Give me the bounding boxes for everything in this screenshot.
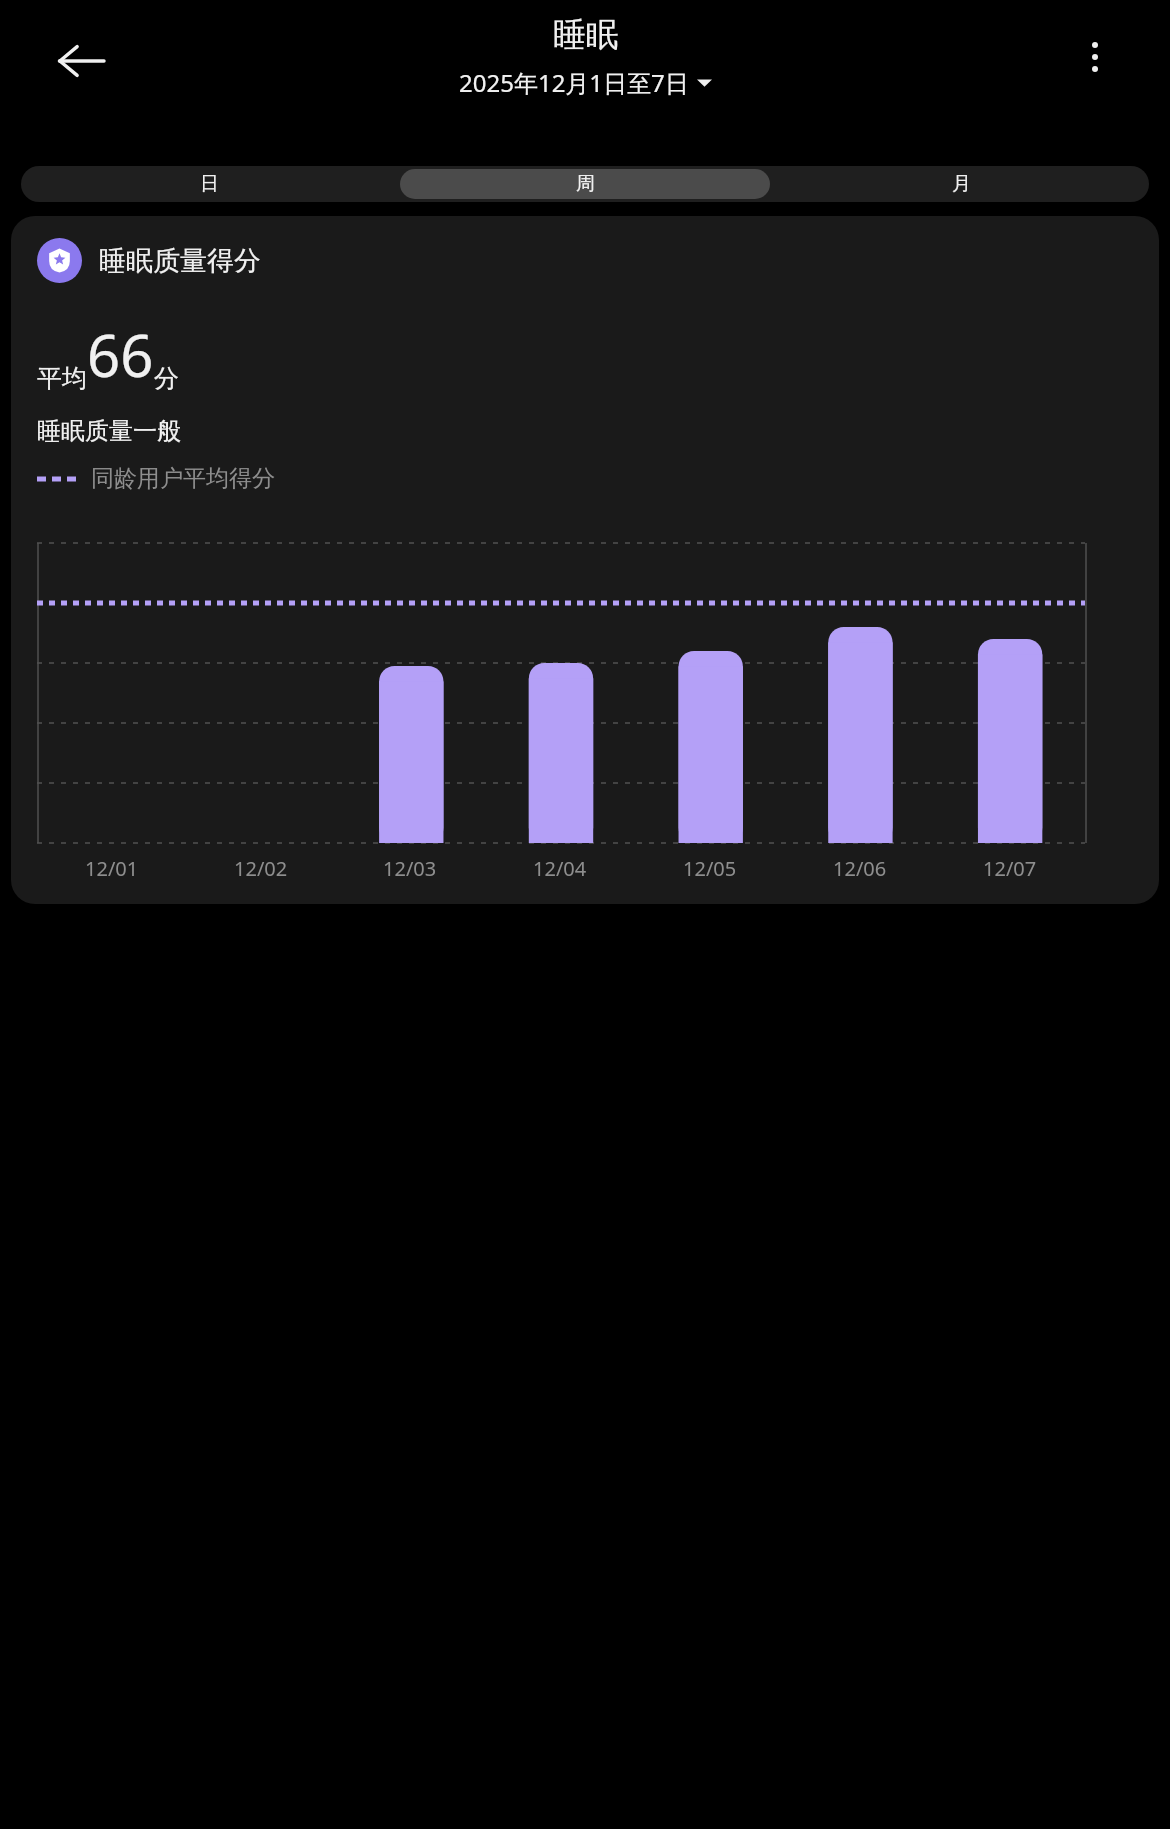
staticText: 2025年12月1日至7日 [459, 66, 689, 99]
staticText: 12/02 [234, 855, 288, 882]
staticText: 分 [154, 363, 179, 394]
staticText: 12/06 [833, 855, 887, 882]
button[interactable]: 周 [400, 169, 770, 199]
staticText: 12/04 [533, 855, 587, 882]
button[interactable]: More options [1066, 28, 1124, 86]
staticText: 睡眠 [553, 14, 619, 56]
button[interactable]: 2025年12月1日至7日 [459, 66, 712, 99]
staticText: 睡眠质量得分 [99, 244, 261, 278]
staticText: 12/01 [85, 855, 139, 882]
staticText: 周 [576, 172, 595, 196]
staticText: 月 [952, 172, 971, 196]
button[interactable]: 月 [776, 169, 1146, 199]
staticText: 12/07 [983, 855, 1037, 882]
staticText: 同龄用户平均得分 [91, 464, 275, 493]
button[interactable]: 日 [24, 169, 394, 199]
staticText: 66 [87, 315, 154, 394]
button[interactable]: Back [50, 30, 112, 92]
staticText: 12/05 [683, 855, 737, 882]
staticText: 平均 [37, 363, 87, 394]
staticText: 12/03 [383, 855, 437, 882]
staticText: 日 [200, 172, 219, 196]
staticText: 睡眠质量一般 [37, 416, 181, 446]
